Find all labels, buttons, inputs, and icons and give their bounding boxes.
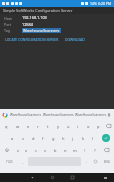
staticText: WareHouseScanners [75, 113, 106, 117]
button[interactable]: g [49, 133, 57, 143]
staticText: k [82, 136, 85, 141]
staticText: WarehouseScanners [43, 113, 74, 117]
button[interactable]: ! [81, 145, 89, 155]
button[interactable]: , [18, 157, 27, 166]
staticText: g [52, 136, 55, 141]
button[interactable]: ?123 [1, 157, 18, 166]
button[interactable]: m [71, 145, 79, 155]
staticText: 192.168.1.103 [22, 15, 47, 20]
staticText: ENG [104, 160, 110, 164]
staticText: 12584 [22, 22, 33, 27]
button[interactable]: Shift [2, 145, 12, 155]
staticText: ! [84, 148, 86, 153]
button[interactable]: Hide keyboard [22, 173, 42, 182]
staticText: Host [4, 16, 12, 21]
button[interactable]: e [24, 121, 32, 131]
button[interactable]: f [39, 133, 47, 143]
button[interactable]: Recents [62, 173, 82, 182]
button[interactable]: v [41, 145, 49, 155]
staticText: ? [94, 148, 96, 153]
button[interactable]: b [51, 145, 59, 155]
button[interactable]: c [32, 145, 39, 155]
button[interactable]: WareHouseScanners [74, 109, 106, 120]
staticText: p [97, 124, 100, 129]
staticText: Simple SoftWorks Configuration Server [3, 8, 73, 13]
button[interactable]: r [34, 121, 42, 131]
button[interactable]: a [8, 133, 17, 143]
button[interactable]: Home [42, 173, 62, 182]
staticText: DOWNLOAD CONFIGURATION [65, 37, 113, 42]
button[interactable]: WareHouseScanners [9, 109, 42, 120]
button[interactable]: Tag [0, 27, 114, 33]
staticText: n [64, 148, 67, 153]
staticText: a [11, 136, 14, 141]
staticText: e [27, 124, 30, 129]
button[interactable]: k [79, 133, 87, 143]
button[interactable]: n [61, 145, 69, 155]
button[interactable]: Emoji [91, 157, 100, 166]
staticText: h [62, 136, 65, 141]
staticText: z [17, 148, 19, 153]
button[interactable]: i [74, 121, 82, 131]
staticText: 14% [90, 1, 97, 6]
button[interactable]: Port [0, 21, 114, 27]
staticText: j [72, 136, 74, 141]
staticText: m [73, 148, 77, 153]
staticText: x [25, 148, 28, 153]
staticText: w [16, 124, 20, 129]
staticText: s [22, 136, 24, 141]
staticText: u [67, 124, 70, 129]
button[interactable]: d [29, 133, 37, 143]
button[interactable]: DOWNLOAD CONFIGURATION [64, 36, 114, 43]
button[interactable]: Switch input method [96, 173, 114, 182]
button[interactable]: Voice input [106, 109, 112, 120]
staticText: WarehouseScanners [23, 28, 60, 33]
staticText: d [32, 136, 35, 141]
button[interactable]: u [64, 121, 72, 131]
staticText: 6:20 PM [98, 1, 112, 6]
button[interactable]: q [2, 121, 11, 131]
staticText: y [57, 124, 60, 129]
staticText: f [42, 136, 44, 141]
staticText: q [5, 124, 8, 129]
staticText: . [86, 159, 87, 164]
staticText: , [22, 159, 23, 164]
button[interactable]: ENG [100, 157, 113, 166]
staticText: i [77, 124, 79, 129]
button[interactable]: p [94, 121, 102, 131]
button[interactable]: j [69, 133, 77, 143]
button[interactable]: w [13, 121, 22, 131]
staticText: o [87, 124, 90, 129]
button[interactable]: t [44, 121, 52, 131]
staticText: l [92, 136, 94, 141]
staticText: WareHouseScanners [10, 113, 41, 117]
button[interactable]: Host [0, 15, 114, 21]
staticText: v [44, 148, 47, 153]
button[interactable]: ? [91, 145, 99, 155]
button[interactable]: y [54, 121, 62, 131]
staticText: r [37, 124, 39, 129]
button[interactable]: Enter [102, 134, 110, 142]
button[interactable]: h [59, 133, 67, 143]
staticText: LOCATE CONFIGURATION SERVER [5, 37, 59, 42]
button[interactable]: Delete [101, 145, 112, 155]
staticText: c [35, 148, 37, 153]
staticText: Tag [4, 28, 10, 33]
staticText: t [47, 124, 49, 129]
staticText: Port [4, 22, 12, 27]
button[interactable]: z [14, 145, 21, 155]
button[interactable]: Google [2, 112, 7, 117]
button[interactable]: WarehouseScanners [42, 109, 74, 120]
staticText: b [54, 148, 57, 153]
button[interactable]: Backspace [104, 121, 112, 131]
button[interactable]: l [89, 133, 97, 143]
staticText: ?123 [6, 160, 13, 164]
button[interactable]: o [84, 121, 92, 131]
button[interactable]: LOCATE CONFIGURATION SERVER [4, 36, 60, 43]
button[interactable]: s [19, 133, 27, 143]
button[interactable]: x [23, 145, 30, 155]
